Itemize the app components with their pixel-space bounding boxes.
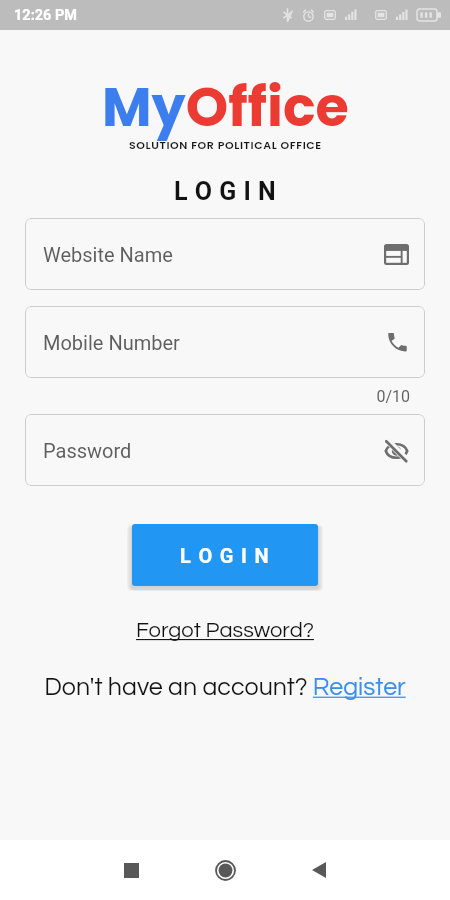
- other: Website: [384, 244, 409, 265]
- button[interactable]: Password: [25, 414, 425, 486]
- staticText: Password: [43, 439, 132, 462]
- staticText: L O G I N: [0, 177, 450, 206]
- button[interactable]: Mobile Number: [25, 306, 425, 378]
- staticText: Mobile Number: [43, 331, 180, 354]
- button[interactable]: L O G I N: [132, 524, 318, 586]
- staticText: L O G I N: [180, 544, 270, 567]
- button[interactable]: Back: [272, 840, 366, 900]
- staticText: SOLUTION FOR POLITICAL OFFICE: [129, 137, 322, 152]
- staticText: Website Name: [43, 243, 173, 266]
- staticText: MyOffice: [102, 69, 349, 145]
- other: Show password: [384, 438, 409, 463]
- button[interactable]: Home: [178, 840, 272, 900]
- other: Mobile number: [385, 330, 409, 354]
- button[interactable]: Recents: [84, 840, 178, 900]
- staticText: 0/10: [0, 387, 410, 406]
- button[interactable]: Website Name: [25, 218, 425, 290]
- staticText: 12:26 PM: [14, 7, 78, 24]
- button[interactable]: Don't have an account? Register: [0, 674, 450, 700]
- button[interactable]: Forgot Password?: [0, 619, 450, 642]
